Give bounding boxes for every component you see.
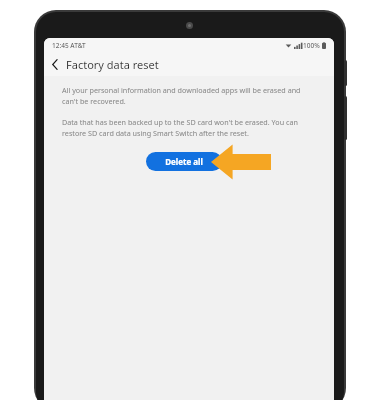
staticText: Factory data reset <box>66 57 159 72</box>
button[interactable]: Delete all <box>146 152 222 171</box>
staticText: Data that has been backed up to the SD c… <box>62 117 316 138</box>
staticText: All your personal information and downlo… <box>62 85 316 106</box>
staticText: 100% <box>303 41 320 50</box>
button[interactable]: Back <box>44 52 66 76</box>
staticText: 12:45 AT&T <box>52 41 86 50</box>
staticText: Delete all <box>165 156 203 167</box>
